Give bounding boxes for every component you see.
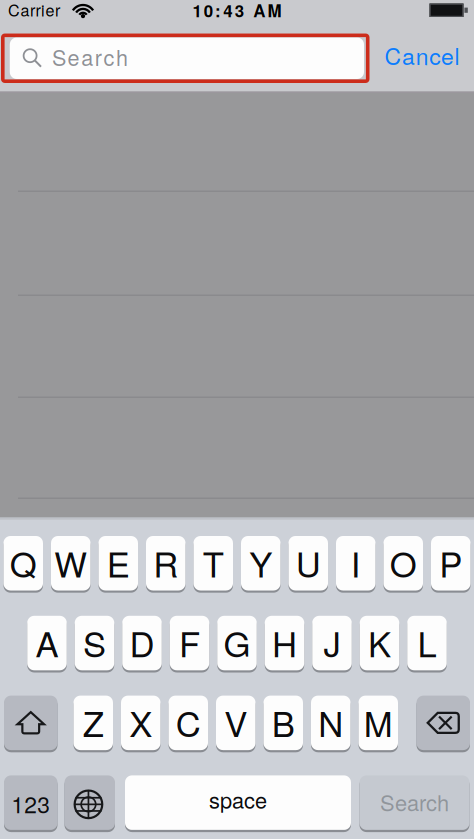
button[interactable]: Search bbox=[359, 775, 469, 830]
staticText: G bbox=[223, 617, 250, 667]
staticText: space bbox=[209, 784, 267, 815]
staticText: Carrier bbox=[8, 0, 60, 21]
staticText: O bbox=[390, 538, 417, 587]
button[interactable]: N bbox=[311, 696, 350, 750]
staticText: Cancel bbox=[384, 39, 459, 71]
staticText: B bbox=[272, 697, 295, 747]
staticText: V bbox=[224, 697, 247, 747]
button[interactable]: Z bbox=[73, 696, 113, 750]
button[interactable]: space bbox=[125, 775, 351, 830]
staticText: A bbox=[35, 617, 58, 667]
button[interactable]: Q bbox=[3, 536, 43, 590]
button[interactable]: V bbox=[216, 696, 255, 750]
button[interactable]: D bbox=[122, 616, 162, 670]
button[interactable]: J bbox=[312, 616, 352, 670]
button[interactable]: Cancel bbox=[372, 33, 472, 77]
button[interactable]: C bbox=[168, 696, 208, 750]
staticText: E bbox=[107, 538, 130, 587]
staticText: Z bbox=[83, 697, 104, 747]
button[interactable]: K bbox=[360, 616, 399, 670]
staticText: Y bbox=[249, 538, 272, 587]
button[interactable]: X bbox=[121, 696, 160, 750]
staticText: K bbox=[368, 617, 391, 667]
button[interactable]: F bbox=[170, 616, 209, 670]
button[interactable]: I bbox=[336, 536, 375, 590]
staticText: U bbox=[296, 538, 321, 587]
button[interactable]: R bbox=[146, 536, 185, 590]
staticText: D bbox=[129, 617, 154, 667]
staticText: Search bbox=[52, 41, 128, 72]
button[interactable]: A bbox=[27, 616, 67, 670]
staticText: W bbox=[54, 538, 87, 587]
staticText: C bbox=[176, 697, 201, 747]
staticText: 10:43 AM bbox=[192, 0, 282, 22]
button[interactable]: B bbox=[263, 696, 303, 750]
staticText: M bbox=[364, 697, 393, 747]
staticText: X bbox=[129, 697, 152, 747]
button[interactable]: W bbox=[51, 536, 90, 590]
staticText: N bbox=[318, 697, 343, 747]
staticText: 123 bbox=[11, 787, 50, 820]
staticText: P bbox=[439, 538, 462, 587]
staticText: T bbox=[203, 538, 224, 587]
button[interactable]: H bbox=[265, 616, 304, 670]
button[interactable]: P bbox=[431, 536, 470, 590]
button[interactable]: Delete bbox=[416, 696, 470, 750]
button[interactable]: Next keyboard bbox=[64, 775, 115, 830]
staticText: Q bbox=[10, 538, 37, 587]
staticText: F bbox=[179, 617, 200, 667]
staticText: Search bbox=[380, 786, 449, 817]
button[interactable]: S bbox=[75, 616, 114, 670]
button[interactable]: L bbox=[407, 616, 447, 670]
button[interactable]: U bbox=[288, 536, 328, 590]
staticText: S bbox=[83, 617, 106, 667]
staticText: J bbox=[323, 617, 340, 667]
staticText: H bbox=[272, 617, 297, 667]
staticText: I bbox=[351, 538, 361, 587]
button[interactable]: G bbox=[217, 616, 257, 670]
button[interactable]: Search bbox=[1, 33, 369, 83]
button[interactable]: M bbox=[358, 696, 398, 750]
button[interactable]: Y bbox=[241, 536, 280, 590]
button[interactable]: T bbox=[193, 536, 233, 590]
staticText: L bbox=[417, 617, 436, 667]
button[interactable]: E bbox=[98, 536, 138, 590]
button[interactable]: O bbox=[383, 536, 423, 590]
button[interactable]: 123 bbox=[4, 775, 57, 830]
button[interactable]: Shift bbox=[4, 696, 57, 750]
staticText: R bbox=[153, 538, 178, 587]
